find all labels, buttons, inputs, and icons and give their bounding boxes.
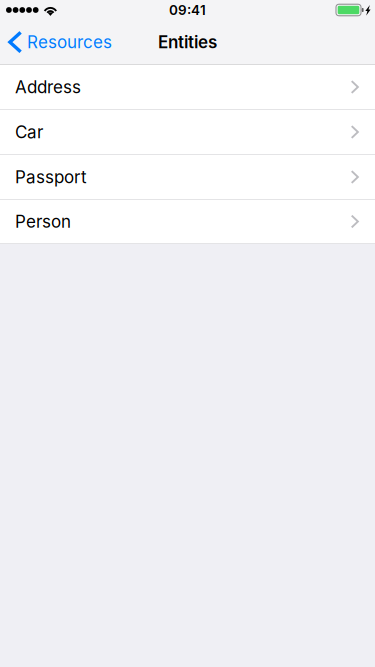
button[interactable]: Person [0, 200, 375, 244]
staticText: Address [15, 77, 81, 97]
staticText: Person [15, 211, 71, 232]
staticText: Resources [27, 32, 112, 52]
staticText: Car [15, 122, 43, 142]
staticText: 09:41 [169, 2, 206, 18]
button[interactable]: Resources [0, 20, 120, 64]
button[interactable]: Address [0, 65, 375, 110]
staticText: Passport [15, 167, 87, 187]
button[interactable]: Passport [0, 155, 375, 200]
staticText: Entities [158, 32, 217, 52]
button[interactable]: Car [0, 110, 375, 155]
